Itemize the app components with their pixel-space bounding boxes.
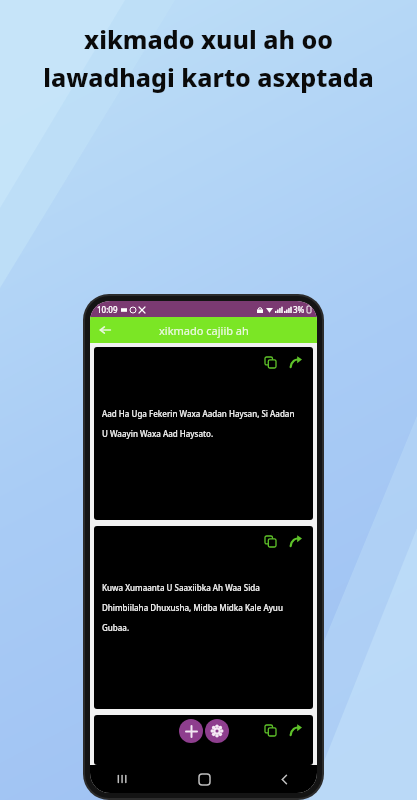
button[interactable]: Copy xyxy=(262,354,278,370)
staticText: xikmado cajiib ah xyxy=(159,323,249,338)
staticText: U Waayin Waxa Aad Haysato. xyxy=(102,428,214,439)
button[interactable]: Copy xyxy=(262,533,278,549)
button[interactable]: Home xyxy=(191,766,217,792)
button[interactable]: Copy xyxy=(262,722,278,738)
staticText: Aad Ha Uga Fekerin Waxa Aadan Haysan, Si… xyxy=(102,408,295,419)
button[interactable]: Add xyxy=(179,719,203,743)
staticText: 3% xyxy=(293,304,305,315)
button[interactable]: Copy xyxy=(94,526,313,709)
button[interactable]: Share xyxy=(288,722,304,738)
staticText: xikmado xuul ah oo xyxy=(84,22,333,56)
button[interactable]: Share xyxy=(288,354,304,370)
staticText: lawadhagi karto asxptada xyxy=(43,60,374,94)
button[interactable]: Share xyxy=(288,533,304,549)
staticText: Kuwa Xumaanta U Saaxiibka Ah Waa Sida xyxy=(102,582,260,593)
staticText: Dhimbiilaha Dhuxusha, Midba Midka Kale A… xyxy=(102,602,283,613)
button[interactable]: Back xyxy=(94,319,116,341)
button[interactable]: Recents xyxy=(110,766,136,792)
button[interactable]: Settings xyxy=(205,719,229,743)
button[interactable]: Copy xyxy=(94,347,313,520)
button[interactable]: Copy xyxy=(94,715,313,765)
button[interactable]: Back xyxy=(271,766,297,792)
staticText: Gubaa. xyxy=(102,622,130,633)
staticText: 10:09 xyxy=(97,304,118,315)
